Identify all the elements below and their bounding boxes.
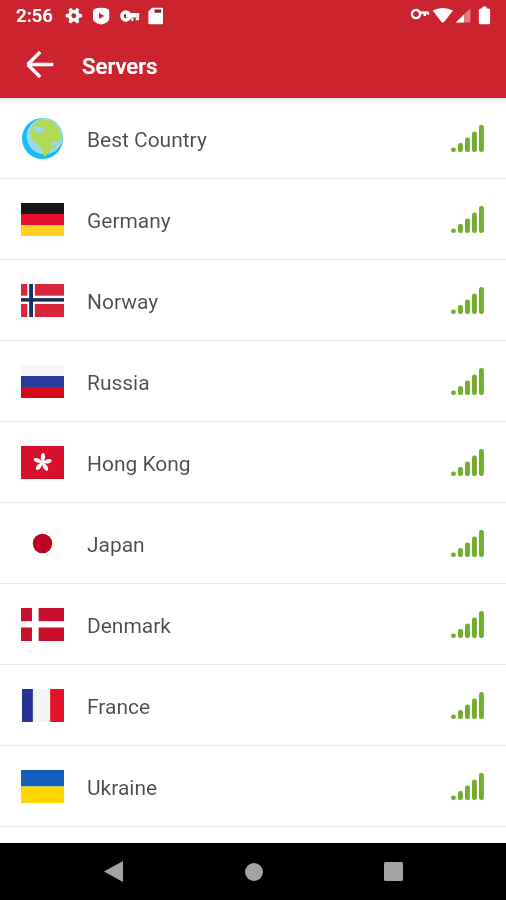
button[interactable]: Russia	[0, 341, 506, 421]
button[interactable]: Japan	[0, 503, 506, 583]
button[interactable]: Recents	[384, 843, 403, 900]
button[interactable]: France	[0, 665, 506, 745]
staticText: Norway	[87, 290, 159, 315]
staticText: Best Country	[87, 128, 207, 153]
staticText: Hong Kong	[87, 452, 191, 477]
staticText: Denmark	[87, 614, 171, 639]
button[interactable]: Denmark	[0, 584, 506, 664]
staticText: Servers	[82, 53, 158, 79]
button[interactable]: Germany	[0, 179, 506, 259]
staticText: Russia	[87, 371, 150, 396]
button[interactable]: Home	[245, 843, 263, 900]
staticText: 2:56	[16, 5, 53, 27]
button[interactable]: Best Country	[0, 98, 506, 178]
button[interactable]: Back	[103, 843, 123, 900]
staticText: Germany	[87, 209, 171, 234]
staticText: Ukraine	[87, 776, 158, 801]
button[interactable]: Hong Kong	[0, 422, 506, 502]
staticText: France	[87, 695, 151, 720]
button[interactable]: Ukraine	[0, 746, 506, 826]
button[interactable]: Back	[12, 36, 68, 92]
staticText: Japan	[87, 533, 145, 558]
button[interactable]: Norway	[0, 260, 506, 340]
